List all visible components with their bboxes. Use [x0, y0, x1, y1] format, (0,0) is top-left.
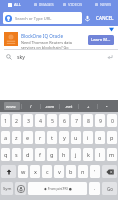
- staticText: sky: [17, 53, 25, 60]
- button[interactable]: q: [1, 148, 10, 161]
- button[interactable]: ': [90, 165, 100, 178]
- button[interactable]: x: [30, 165, 40, 178]
- staticText: i: [87, 134, 89, 141]
- button[interactable]: y: [59, 131, 69, 144]
- button[interactable]: Symbols: [1, 182, 13, 195]
- button[interactable]: ◆ Français(FR) ●: [28, 182, 87, 195]
- button[interactable]: c: [42, 165, 52, 178]
- button[interactable]: l: [95, 148, 105, 161]
- staticText: Need Thomson Reuters data services on bl…: [21, 40, 72, 49]
- staticText: .: [94, 185, 96, 192]
- button[interactable]: Go: [102, 182, 117, 195]
- button[interactable]: o: [95, 131, 105, 144]
- button[interactable]: •: [98, 102, 116, 110]
- button[interactable]: Shift: [1, 165, 16, 178]
- staticText: g: [50, 151, 54, 158]
- button[interactable]: 2: [12, 114, 21, 127]
- button[interactable]: n: [78, 165, 88, 178]
- staticText: IMAGES: [39, 2, 54, 7]
- button[interactable]: r: [35, 131, 45, 144]
- staticText: t: [51, 134, 53, 141]
- staticText: www.: [6, 104, 17, 109]
- button[interactable]: h: [59, 148, 69, 161]
- button[interactable]: j: [71, 148, 81, 161]
- staticText: j: [75, 151, 77, 158]
- button[interactable]: Voice input: [15, 182, 26, 195]
- button[interactable]: /: [22, 102, 40, 110]
- button[interactable]: Search or Type URL: [3, 12, 82, 24]
- button[interactable]: IMAGES: [29, 0, 58, 9]
- other: Insert suggestion: [107, 54, 113, 60]
- button[interactable]: t: [47, 131, 57, 144]
- button[interactable]: g: [47, 148, 57, 161]
- button[interactable]: b: [66, 165, 76, 178]
- button[interactable]: w: [18, 165, 28, 178]
- button[interactable]: 4: [35, 114, 45, 127]
- button[interactable]: i: [83, 131, 93, 144]
- staticText: a: [4, 134, 8, 141]
- staticText: 7: [75, 117, 78, 124]
- button[interactable]: .: [89, 182, 100, 195]
- button[interactable]: Ad info: [109, 27, 114, 32]
- staticText: b: [69, 168, 73, 175]
- staticText: Learn M...: [91, 37, 111, 43]
- button[interactable]: .net: [60, 102, 78, 110]
- button[interactable]: Ad info: [0, 26, 118, 49]
- staticText: o: [98, 134, 102, 141]
- button[interactable]: Voice search: [82, 11, 93, 25]
- staticText: q: [4, 151, 8, 158]
- button[interactable]: 6: [59, 114, 69, 127]
- button[interactable]: 8: [83, 114, 93, 127]
- staticText: w: [21, 168, 26, 175]
- button[interactable]: 3: [23, 114, 33, 127]
- staticText: BlockOne IQ Oracle: [21, 33, 64, 39]
- button[interactable]: a: [1, 131, 10, 144]
- button[interactable]: +: [79, 102, 97, 110]
- staticText: .net: [65, 104, 73, 109]
- staticText: d: [26, 151, 30, 158]
- staticText: c: [46, 168, 49, 175]
- staticText: z: [15, 134, 18, 141]
- button[interactable]: e: [23, 131, 33, 144]
- staticText: +: [87, 104, 90, 109]
- staticText: s: [15, 151, 18, 158]
- button[interactable]: 5: [47, 114, 57, 127]
- button[interactable]: CANCEL: [93, 9, 116, 26]
- staticText: x: [34, 168, 37, 175]
- button[interactable]: k: [83, 148, 93, 161]
- button[interactable]: 7: [71, 114, 81, 127]
- staticText: r: [39, 134, 42, 141]
- staticText: 8: [87, 117, 90, 124]
- button[interactable]: 9: [95, 114, 105, 127]
- button[interactable]: ALL: [0, 0, 29, 9]
- staticText: n: [81, 168, 85, 175]
- button[interactable]: p: [107, 131, 117, 144]
- button[interactable]: 0: [107, 114, 117, 127]
- button[interactable]: u: [71, 131, 81, 144]
- button[interactable]: f: [35, 148, 45, 161]
- button[interactable]: d: [23, 148, 33, 161]
- staticText: 6: [63, 117, 66, 124]
- button[interactable]: Learn M...: [88, 35, 114, 45]
- button[interactable]: z: [12, 131, 21, 144]
- staticText: l: [99, 151, 101, 158]
- staticText: CANCEL: [96, 15, 114, 21]
- button[interactable]: .com: [41, 102, 59, 110]
- button[interactable]: sky: [0, 50, 118, 63]
- button[interactable]: s: [12, 148, 21, 161]
- staticText: h: [62, 151, 66, 158]
- button[interactable]: m: [107, 148, 117, 161]
- button[interactable]: VIDEOS: [58, 0, 88, 9]
- staticText: 4: [39, 117, 42, 124]
- button[interactable]: 1: [1, 114, 10, 127]
- staticText: y: [63, 134, 66, 141]
- staticText: m: [109, 151, 115, 158]
- button[interactable]: Backspace: [102, 165, 117, 178]
- staticText: ALL: [14, 2, 21, 7]
- staticText: •: [106, 104, 108, 109]
- button[interactable]: NEWS: [88, 0, 118, 9]
- staticText: Sym: [3, 186, 12, 192]
- button[interactable]: v: [54, 165, 64, 178]
- staticText: ◆ Français(FR) ●: [44, 186, 72, 191]
- button[interactable]: www.: [2, 102, 21, 110]
